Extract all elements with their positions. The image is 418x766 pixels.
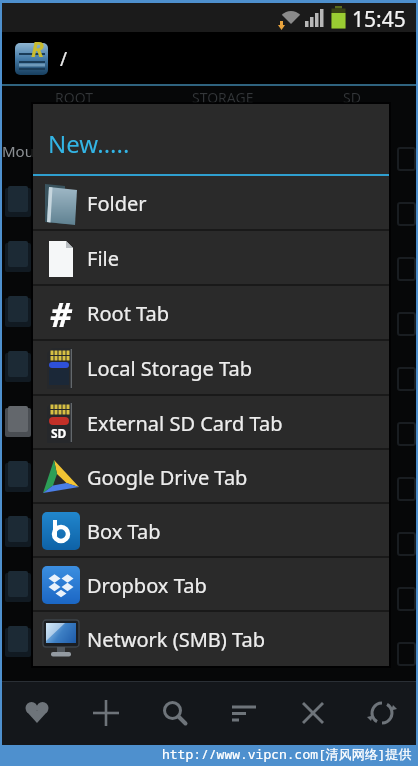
staticText: File — [87, 245, 119, 272]
staticText: # — [50, 291, 72, 337]
staticText: 15:45 — [352, 5, 406, 34]
staticText: R — [31, 35, 45, 64]
button[interactable] — [209, 681, 278, 745]
staticText: Google Drive Tab — [87, 464, 248, 491]
staticText: / — [60, 46, 68, 72]
staticText: ROOT — [55, 88, 93, 107]
staticText: SD — [343, 88, 361, 107]
staticText: Local Storage Tab — [87, 355, 252, 382]
staticText: External SD Card Tab — [87, 410, 283, 437]
button[interactable]: Folder — [33, 176, 389, 231]
button[interactable] — [2, 681, 71, 745]
button[interactable]: Dropbox Tab — [33, 558, 389, 612]
staticText: Network (SMB) Tab — [87, 626, 266, 653]
button[interactable]: File — [33, 231, 389, 286]
staticText: http://www.vipcn.com[清风网络]提供 — [162, 745, 412, 763]
button[interactable]: Network (SMB) Tab — [33, 612, 389, 666]
button[interactable]: Local Storage Tab — [33, 341, 389, 396]
button[interactable] — [347, 681, 416, 745]
staticText: Dropbox Tab — [87, 572, 207, 599]
staticText: New..... — [48, 127, 130, 160]
staticText: STORAGE — [192, 88, 254, 107]
staticText: Mou — [2, 141, 34, 161]
staticText: Folder — [87, 190, 147, 217]
button[interactable] — [71, 681, 140, 745]
staticText: SD — [51, 425, 67, 441]
staticText: Root Tab — [87, 300, 170, 327]
button[interactable] — [278, 681, 347, 745]
button[interactable]: SD — [33, 396, 389, 450]
button[interactable]: # — [33, 286, 389, 341]
button[interactable] — [140, 681, 209, 745]
button[interactable]: Google Drive Tab — [33, 450, 389, 504]
button[interactable]: Box Tab — [33, 504, 389, 558]
staticText: Box Tab — [87, 518, 161, 545]
